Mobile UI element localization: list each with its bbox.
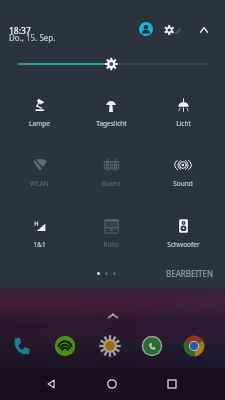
button[interactable]: Back [36,369,66,399]
button[interactable]: Sound [147,155,219,193]
staticText: Sound [173,179,193,188]
staticText: Schwoofer [167,240,200,249]
button[interactable]: Open app drawer [105,308,120,323]
button[interactable]: Brightness [0,54,225,74]
button[interactable]: Collapse [194,20,213,39]
staticText: Tageslicht [96,119,127,128]
button[interactable]: 1&1 [4,216,75,254]
button[interactable]: Chrome [181,333,207,359]
staticText: WLAN [30,179,49,188]
button[interactable]: Schwoofer [147,216,219,254]
button[interactable]: Spotify [52,333,78,359]
button[interactable]: Licht [147,95,219,133]
staticText: Boxen [101,179,121,188]
staticText: Licht [176,119,191,128]
button[interactable]: BEARBEITEN [166,268,214,279]
button[interactable]: Phone [9,333,35,359]
staticText: Lampe [29,119,50,128]
button[interactable]: Home [97,369,127,399]
staticText: 1&1 [33,240,46,249]
staticText: Do., 15. Sep. [9,32,56,43]
staticText: BEARBEITEN [166,268,214,279]
button[interactable]: Settings [164,20,184,40]
button[interactable]: Tageslicht [75,95,147,133]
button[interactable]: Boxen [75,155,147,193]
staticText: Rollo [103,240,119,249]
button[interactable]: WhatsApp [139,333,165,359]
button[interactable]: WLAN [4,155,75,193]
button[interactable]: User profile [136,19,156,39]
button[interactable]: Recents [157,369,187,399]
button[interactable]: 18:37 [9,24,61,42]
button[interactable]: Settings [97,333,123,359]
button[interactable]: Lampe [4,95,75,133]
staticText: 18:37 [9,25,31,37]
button[interactable]: Rollo [75,216,147,254]
